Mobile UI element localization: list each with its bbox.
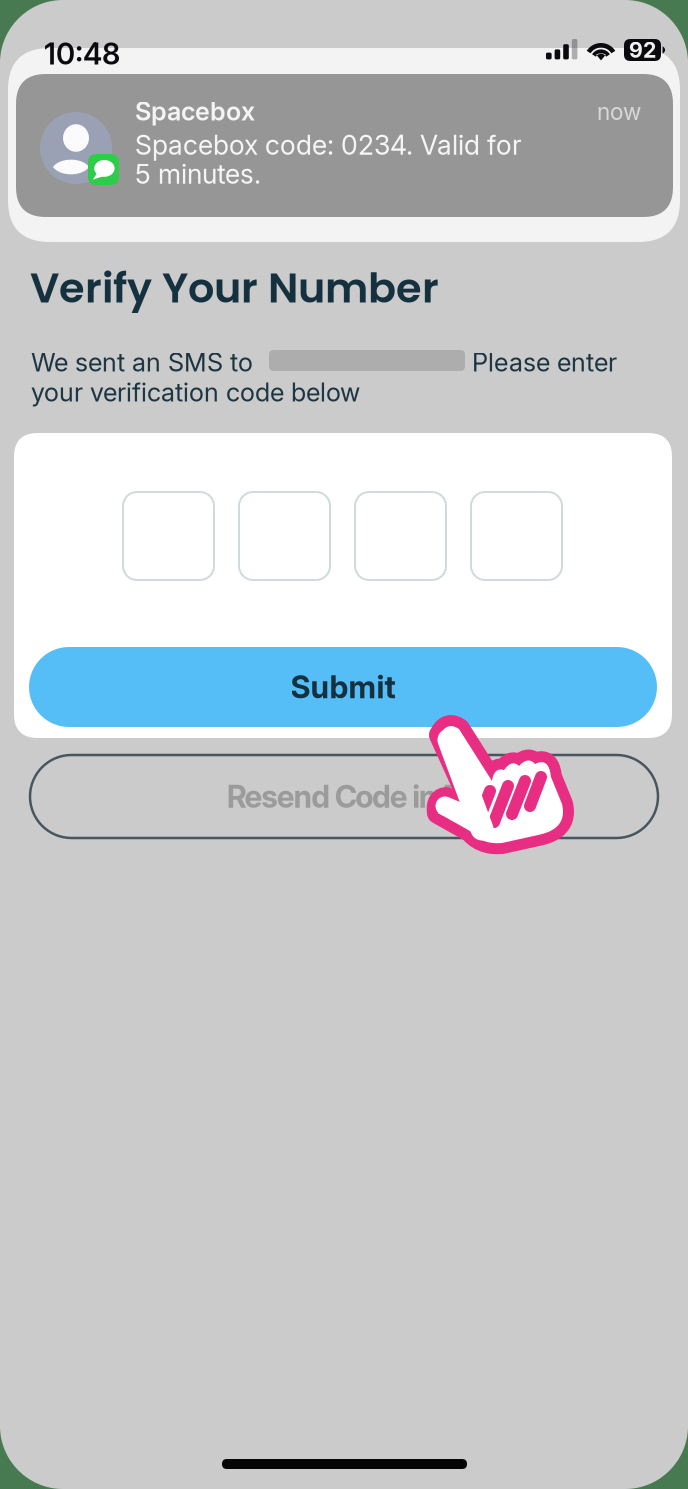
staticText: Please enter bbox=[472, 347, 617, 378]
button[interactable]: Resend Code in 5 bbox=[30, 755, 658, 838]
staticText: 92 bbox=[629, 37, 656, 63]
staticText: Verify Your Number bbox=[30, 259, 439, 317]
staticText: We sent an SMS to bbox=[31, 347, 253, 378]
staticText: your verification code below bbox=[31, 377, 360, 408]
staticText: Resend Code in 5 bbox=[227, 778, 461, 815]
staticText: 5 minutes. bbox=[135, 158, 261, 190]
staticText: 10:48 bbox=[44, 36, 120, 71]
staticText: Spacebox bbox=[135, 96, 255, 127]
staticText: Submit bbox=[290, 668, 395, 705]
button[interactable]: Submit bbox=[29, 647, 657, 727]
staticText: now bbox=[597, 98, 641, 125]
staticText: Spacebox code: 0234. Valid for bbox=[135, 129, 522, 161]
